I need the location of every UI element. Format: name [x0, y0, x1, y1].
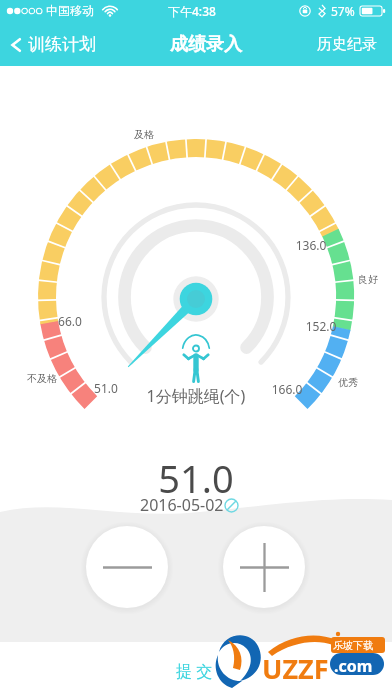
staticText: UZZF: [262, 650, 329, 687]
staticText: 中国移动: [46, 3, 94, 18]
staticText: 2016-05-02: [140, 494, 224, 516]
staticText: 57%: [331, 3, 355, 19]
staticText: 不及格: [12, 372, 72, 385]
staticText: 1分钟跳绳(个): [116, 385, 276, 407]
button[interactable]: 提 交: [168, 654, 221, 688]
staticText: 良好: [343, 273, 392, 286]
staticText: 成绩录入: [170, 33, 242, 56]
button[interactable]: Decrease value: [86, 526, 168, 608]
staticText: 136.0: [281, 237, 341, 253]
staticText: 152.0: [291, 318, 351, 334]
staticText: 166.0: [257, 381, 317, 397]
staticText: 及格: [119, 128, 169, 141]
staticText: 乐坡下载: [333, 639, 373, 652]
staticText: 优秀: [323, 376, 373, 389]
button[interactable]: 训练计划: [0, 26, 104, 63]
staticText: 历史纪录: [317, 35, 377, 54]
staticText: .com: [334, 655, 373, 677]
button[interactable]: 历史纪录: [309, 25, 392, 64]
staticText: 提 交: [176, 660, 213, 682]
staticText: 51.0: [96, 452, 296, 504]
staticText: 66.0: [45, 313, 95, 329]
staticText: 训练计划: [28, 34, 96, 55]
staticText: 51.0: [81, 380, 131, 396]
staticText: 下午4:38: [168, 3, 216, 19]
button[interactable]: Increase value: [223, 526, 305, 608]
